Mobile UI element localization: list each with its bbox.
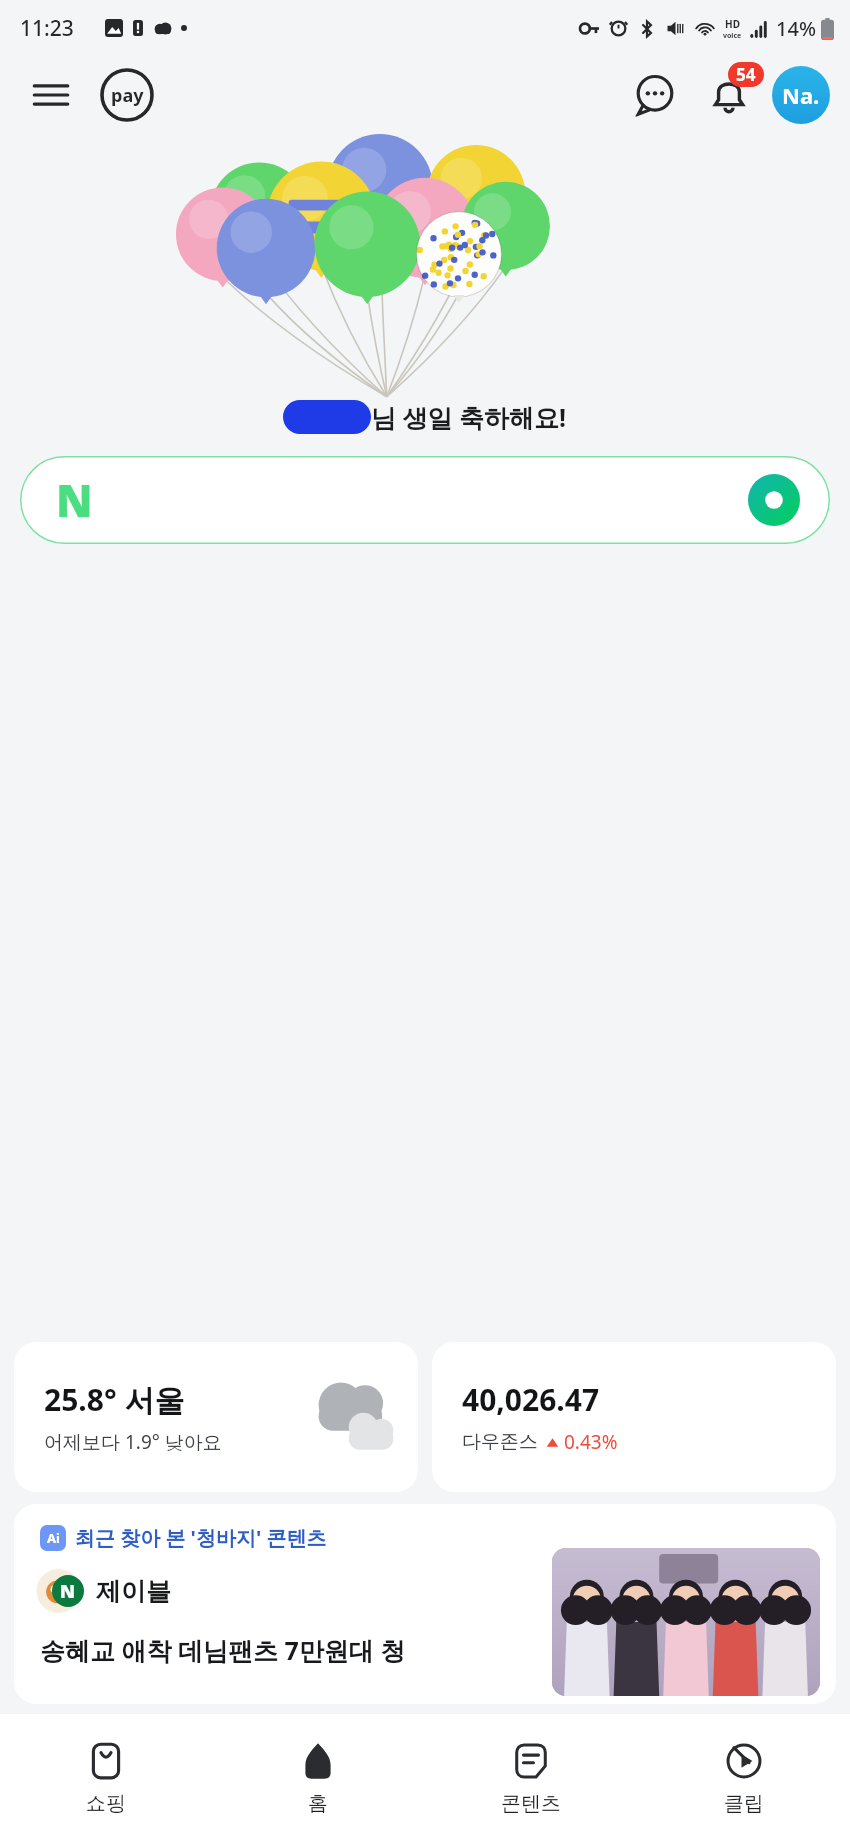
staticText: 다우존스 (462, 1430, 538, 1454)
staticText: 콘텐츠 (501, 1791, 561, 1816)
button[interactable]: Ai (14, 1504, 836, 1704)
button[interactable]: 클립 (637, 1714, 850, 1842)
staticText: 송혜교 애착 데님팬츠 7만원대 청 (40, 1633, 406, 1667)
staticText: 0.43% (564, 1429, 618, 1455)
staticText: voice (723, 31, 742, 41)
staticText: 25.8° 서울 (44, 1379, 185, 1420)
button[interactable]: 콘텐츠 (424, 1714, 637, 1842)
staticText: 최근 찾아 본 '청바지' 콘텐츠 (75, 1524, 327, 1551)
staticText: pay (111, 83, 144, 108)
button[interactable]: N (20, 456, 830, 544)
button[interactable]: Notifications, 54 new (698, 64, 760, 126)
staticText: 홈 (308, 1791, 328, 1816)
button[interactable]: 쇼핑 (0, 1714, 212, 1842)
button[interactable]: Search with Naver (748, 474, 800, 526)
staticText: 클립 (724, 1791, 764, 1816)
staticText: 님 생일 축하해요! (371, 400, 567, 434)
staticText: N (60, 1579, 76, 1604)
staticText: Ai (47, 1529, 60, 1547)
button[interactable]: 홈 (212, 1714, 424, 1842)
staticText: HD (725, 17, 740, 31)
staticText: 11:23 (20, 14, 74, 43)
staticText: N (56, 470, 93, 530)
button[interactable]: 40,026.47 (432, 1342, 836, 1492)
staticText: 14% (776, 15, 816, 42)
button[interactable]: 25.8° 서울 (14, 1342, 418, 1492)
staticText: 제이블 (96, 1576, 171, 1607)
staticText: 40,026.47 (462, 1379, 600, 1420)
staticText: Na. (782, 80, 820, 110)
staticText: 쇼핑 (86, 1791, 126, 1816)
button[interactable]: Messages (626, 66, 684, 124)
button[interactable]: Naver Pay (96, 64, 158, 126)
staticText: 54 (736, 63, 756, 86)
button[interactable]: Menu (22, 66, 80, 124)
button[interactable]: Na. (772, 66, 830, 124)
staticText: 어제보다 1.9° 낮아요 (44, 1429, 222, 1455)
